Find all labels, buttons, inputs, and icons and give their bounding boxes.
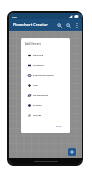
button[interactable]: Storage: [21, 110, 70, 120]
button[interactable]: Zoom in: [55, 21, 64, 30]
button[interactable]: Oval: [21, 80, 70, 90]
button[interactable]: Rounded Rectangle: [21, 70, 70, 80]
button[interactable]: Parallelogram: [21, 90, 70, 100]
staticText: Rectangle: [33, 64, 44, 67]
staticText: Oval: [33, 84, 38, 87]
staticText: Storage: [33, 114, 42, 117]
button[interactable]: Done: [54, 124, 64, 129]
staticText: Rounded Rectangle: [33, 74, 54, 77]
button[interactable]: Rectangle: [21, 60, 70, 70]
button[interactable]: Add element: [68, 148, 76, 156]
staticText: Parallelogram: [33, 94, 48, 97]
staticText: Start/End: [33, 54, 44, 57]
button[interactable]: Start/End: [21, 50, 70, 60]
button[interactable]: Polygon: [21, 100, 70, 110]
staticText: 9:30: [12, 15, 17, 18]
staticText: Done: [56, 125, 62, 128]
staticText: Polygon: [33, 104, 42, 107]
button[interactable]: Zoom out: [64, 21, 73, 30]
button[interactable]: More options: [73, 22, 80, 29]
staticText: Flowchart Creator: [13, 22, 49, 28]
staticText: Add Element: [25, 42, 41, 46]
